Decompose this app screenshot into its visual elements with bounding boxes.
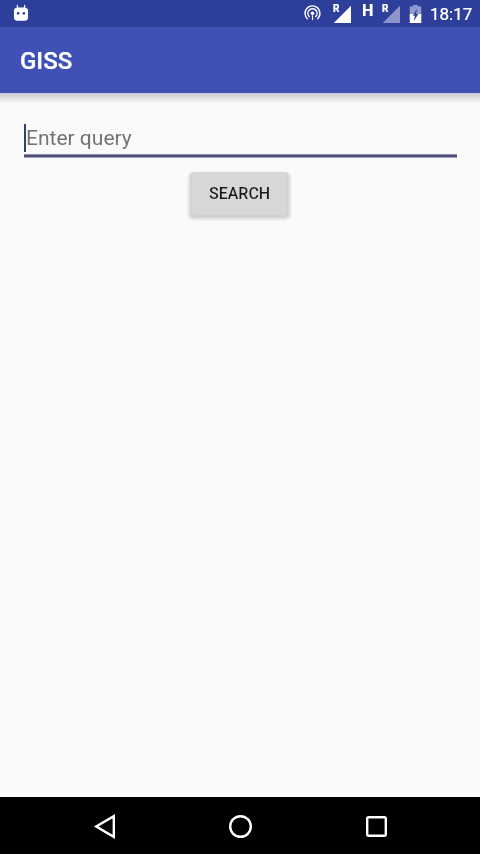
staticText: GISS	[20, 47, 73, 75]
staticText: Enter query	[26, 126, 132, 151]
staticText: R	[333, 3, 340, 15]
button[interactable]: Recents	[352, 802, 400, 850]
staticText: R	[382, 3, 389, 15]
staticText: 18:17	[430, 4, 473, 24]
staticText: H	[362, 1, 374, 20]
button[interactable]: SEARCH	[192, 172, 287, 215]
button[interactable]: Home	[216, 802, 264, 850]
staticText: SEARCH	[209, 184, 271, 203]
button[interactable]: Enter query	[0, 124, 480, 158]
button[interactable]: Back	[81, 802, 129, 850]
